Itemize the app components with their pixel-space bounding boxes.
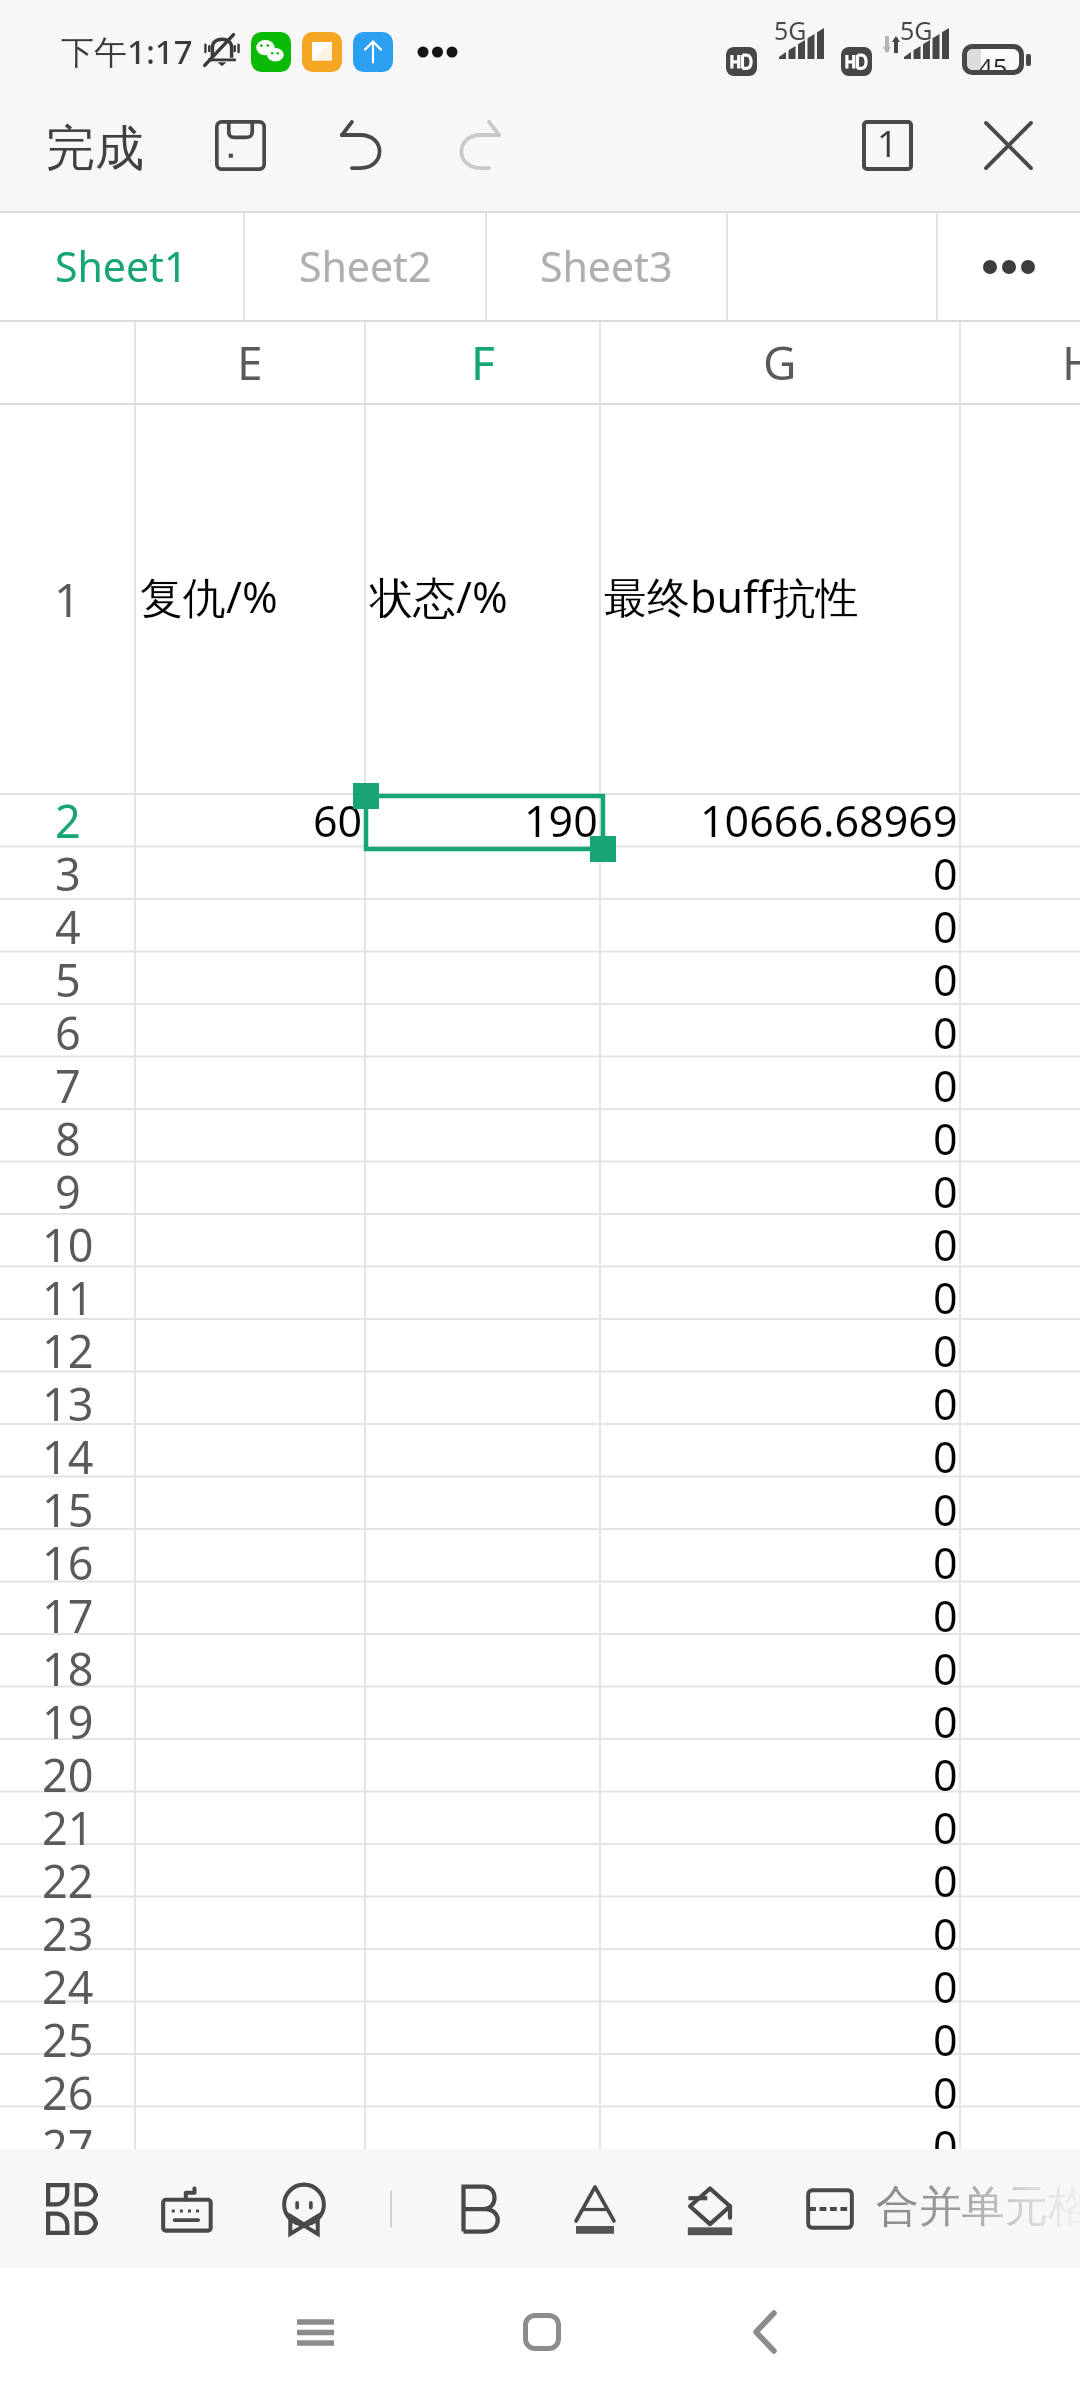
staticText: 15	[42, 1479, 94, 1532]
staticText: 0	[933, 1268, 958, 1321]
button[interactable]: Close	[953, 93, 1063, 211]
staticText: 26	[42, 2062, 94, 2115]
staticText: 0	[933, 1427, 958, 1480]
button[interactable]: G	[600, 322, 960, 403]
staticText: Sheet1	[55, 238, 188, 294]
staticText: 20	[42, 1744, 94, 1797]
staticText: 28	[42, 2168, 94, 2221]
staticText: F	[471, 331, 495, 394]
staticText: G	[763, 331, 797, 394]
staticText: 3	[55, 843, 81, 896]
staticText: Sheet2	[299, 238, 432, 294]
button[interactable]: Home	[452, 2268, 632, 2400]
staticText: H	[1062, 331, 1080, 394]
staticText: 0	[933, 1692, 958, 1745]
staticText: 5	[55, 949, 81, 1002]
staticText: 6	[55, 1002, 81, 1055]
staticText: 0	[933, 1639, 958, 1692]
staticText: 0	[933, 2063, 958, 2116]
staticText: 12	[42, 1320, 94, 1373]
button[interactable]: Recent apps	[225, 2268, 405, 2400]
staticText: 19	[42, 1691, 94, 1744]
staticText: 190	[524, 791, 598, 844]
staticText: 0	[933, 2010, 958, 2063]
staticText: Sheet3	[540, 238, 673, 294]
button[interactable]: F	[365, 322, 600, 403]
staticText: 24	[42, 1956, 94, 2009]
staticText: 0	[933, 1109, 958, 1162]
staticText: 最终buff抗性	[604, 567, 859, 626]
staticText: 10666.68969	[700, 791, 958, 844]
button[interactable]: Bold	[426, 2149, 534, 2268]
staticText: 0	[933, 897, 958, 950]
staticText: 合并单元格	[876, 2180, 1080, 2234]
staticText: 16	[42, 1532, 94, 1585]
button[interactable]: Cell tools	[18, 2149, 126, 2268]
staticText: 25	[42, 2009, 94, 2062]
staticText: 21	[42, 1797, 94, 1850]
staticText: 0	[933, 1586, 958, 1639]
button[interactable]: Insert	[250, 2149, 358, 2268]
staticText: 0	[933, 1162, 958, 1215]
button[interactable]: Sheet2	[245, 211, 485, 322]
staticText: 13	[42, 1373, 94, 1426]
staticText: 0	[933, 1321, 958, 1374]
staticText: 完成	[46, 118, 144, 180]
staticText: 0	[933, 1374, 958, 1427]
staticText: 14	[42, 1426, 94, 1479]
staticText: 0	[933, 1533, 958, 1586]
staticText: 7	[55, 1055, 81, 1108]
button[interactable]: Keyboard	[134, 2149, 242, 2268]
staticText: 下午1:17	[61, 29, 193, 74]
staticText: 状态/%	[370, 567, 508, 626]
button[interactable]: Sheet3	[487, 211, 726, 322]
staticText: 18	[42, 1638, 94, 1691]
staticText: 0	[933, 1056, 958, 1109]
button[interactable]: 完成	[10, 93, 180, 211]
staticText: 0	[933, 1215, 958, 1268]
staticText: 5G	[900, 13, 933, 47]
staticText: 23	[42, 1903, 94, 1956]
button[interactable]: Save	[185, 93, 295, 211]
staticText: 9	[55, 1161, 81, 1214]
staticText: 45	[978, 49, 1008, 70]
staticText: 5G	[774, 13, 807, 47]
staticText: 0	[933, 844, 958, 897]
staticText: 0	[933, 1957, 958, 2010]
button[interactable]: 合并单元格	[876, 2149, 1080, 2268]
button[interactable]: Merge cells	[776, 2149, 884, 2268]
staticText: 2	[55, 790, 81, 843]
staticText: 8	[55, 1108, 81, 1161]
button[interactable]: Sheet count	[832, 93, 942, 211]
staticText: 0	[933, 1745, 958, 1798]
staticText: 22	[42, 1850, 94, 1903]
staticText: 0	[933, 1798, 958, 1851]
staticText: 1	[877, 119, 898, 168]
button[interactable]: H	[960, 322, 1080, 403]
button[interactable]: Back	[675, 2268, 855, 2400]
staticText: 1	[54, 568, 81, 631]
staticText: 0	[933, 2169, 958, 2222]
button[interactable]: E	[135, 322, 365, 403]
staticText: 0	[933, 950, 958, 1003]
staticText: 11	[42, 1267, 94, 1320]
button[interactable]: Fill color	[656, 2149, 764, 2268]
button[interactable]: Sheet1	[0, 211, 243, 322]
staticText: 复仇/%	[140, 567, 278, 626]
staticText: 0	[933, 1904, 958, 1957]
staticText: 0	[933, 1480, 958, 1533]
button[interactable]: Undo	[308, 93, 418, 211]
button[interactable]: Redo	[423, 93, 533, 211]
button[interactable]: More options	[938, 211, 1080, 322]
staticText: 17	[42, 1585, 94, 1638]
staticText: E	[237, 331, 263, 394]
staticText: 10	[42, 1214, 94, 1267]
staticText: 27	[42, 2115, 94, 2168]
staticText: 0	[933, 1851, 958, 1904]
staticText: 60	[313, 791, 363, 844]
staticText: 0	[933, 1003, 958, 1056]
staticText: 4	[55, 896, 81, 949]
staticText: 0	[933, 2116, 958, 2169]
button[interactable]: Font color	[541, 2149, 649, 2268]
